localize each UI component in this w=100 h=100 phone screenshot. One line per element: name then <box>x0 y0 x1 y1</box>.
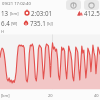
staticText: [W] <box>11 21 18 26</box>
button[interactable]: More options <box>84 0 99 10</box>
staticText: H <box>1 29 4 34</box>
button[interactable]: Share <box>66 0 81 10</box>
staticText: [km] <box>10 11 19 16</box>
staticText: [km] <box>1 93 10 98</box>
staticText: 13 <box>1 9 9 17</box>
button[interactable]: 735.1 <box>23 19 53 27</box>
button[interactable]: 412.5 <box>77 9 100 17</box>
staticText: 412.5 <box>84 9 100 17</box>
staticText: 09/21 17:02:40 <box>2 1 31 7</box>
staticText: [kJ] <box>47 21 53 26</box>
staticText: 6.4 <box>1 19 10 27</box>
button[interactable]: 2:03:01 <box>24 9 53 17</box>
staticText: 20 <box>48 93 53 98</box>
button[interactable]: 6.4 <box>1 19 18 27</box>
staticText: 40 <box>94 93 99 98</box>
button[interactable]: H <box>0 28 100 100</box>
button[interactable]: 13 <box>1 9 19 17</box>
staticText: 735.1 <box>30 19 46 27</box>
staticText: 2:03:01 <box>31 9 53 17</box>
